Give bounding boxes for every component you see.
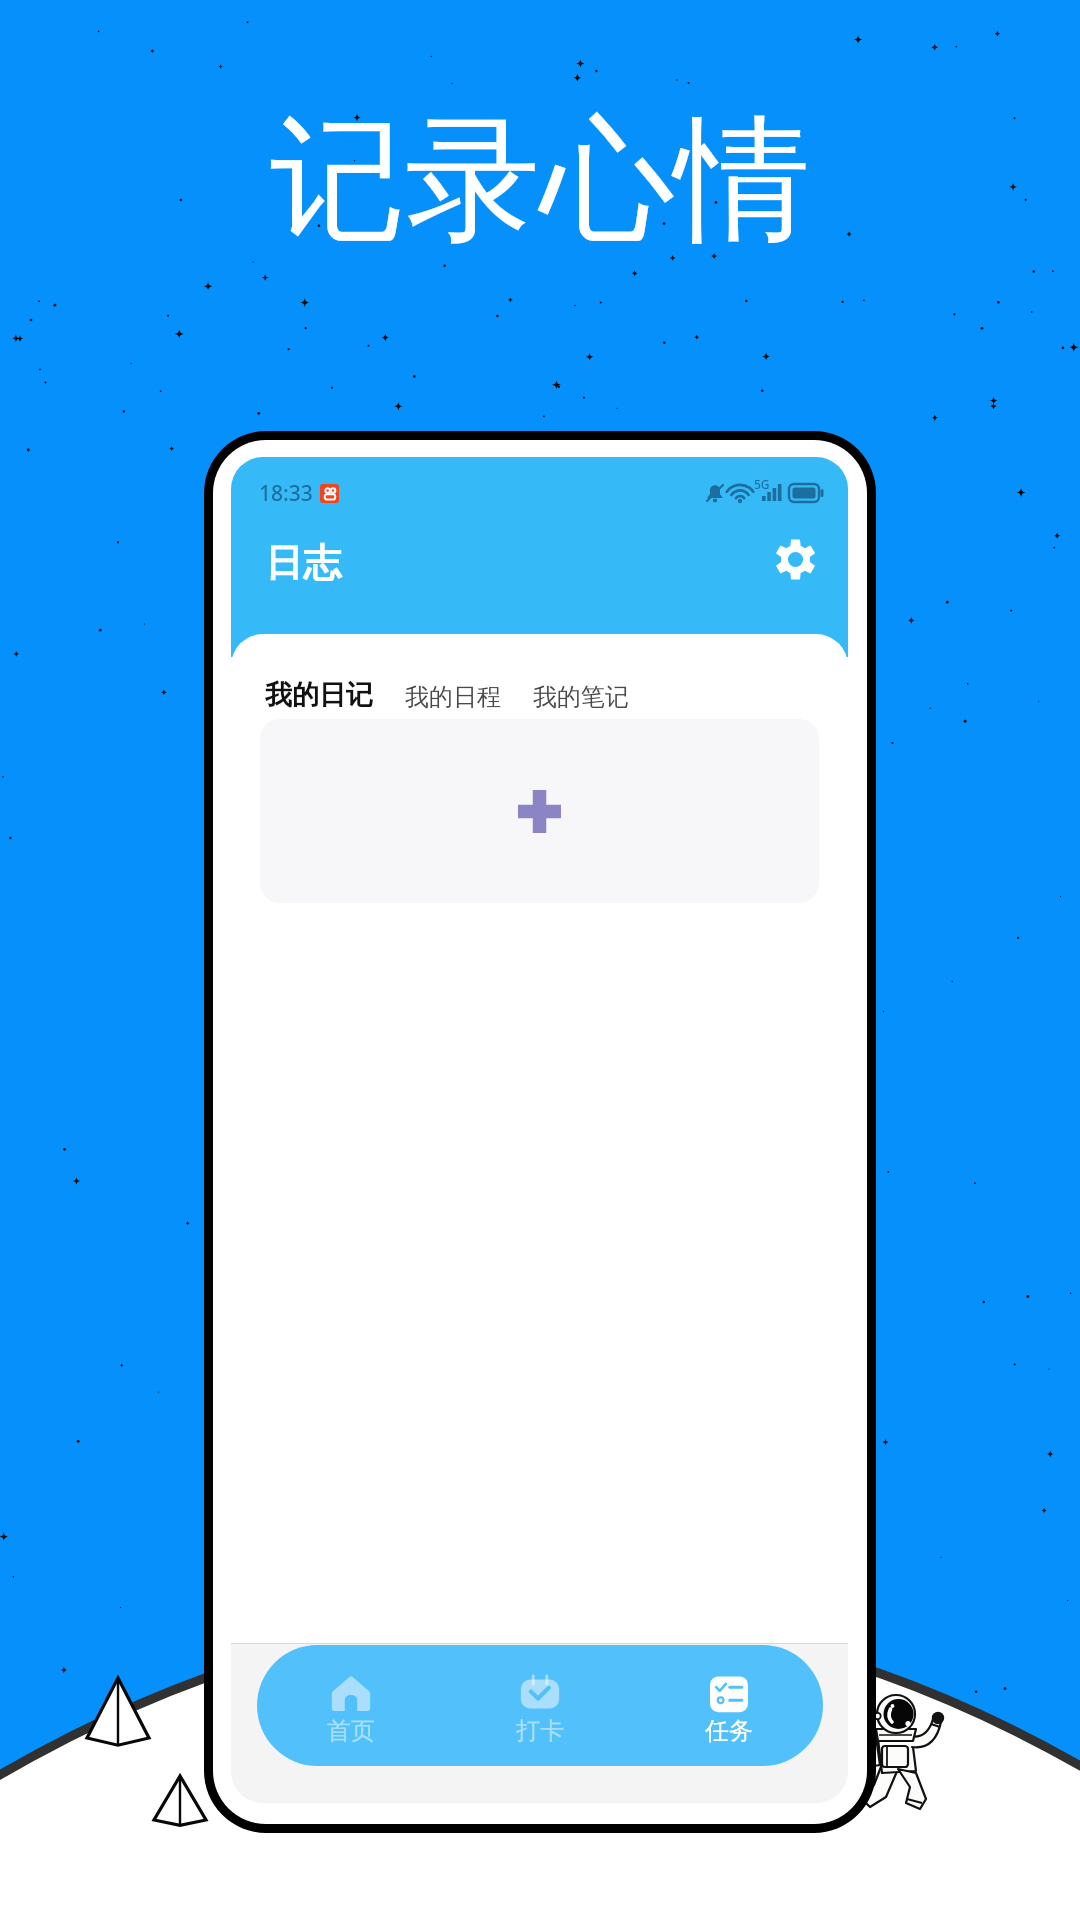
button[interactable]: 首页	[257, 1665, 445, 1746]
staticText: 日志	[265, 539, 341, 587]
button[interactable]: 任务	[634, 1665, 823, 1746]
staticText: 5G	[754, 476, 770, 492]
staticText: 我的日记	[265, 678, 373, 712]
staticText: 任务	[705, 1716, 753, 1746]
button[interactable]: Settings	[766, 530, 824, 588]
button[interactable]: 打卡	[445, 1665, 634, 1746]
button[interactable]: 我的日记	[265, 678, 389, 712]
button[interactable]: 我的日程	[389, 682, 517, 712]
staticText: 18:33	[259, 479, 313, 508]
staticText: 我的日程	[405, 682, 501, 712]
button[interactable]: 我的笔记	[517, 682, 645, 712]
staticText: 打卡	[516, 1716, 564, 1746]
staticText: 首页	[327, 1716, 375, 1746]
button[interactable]: Add diary entry	[260, 719, 819, 903]
staticText: 我的笔记	[533, 682, 629, 712]
staticText: 记录心情	[270, 96, 810, 266]
